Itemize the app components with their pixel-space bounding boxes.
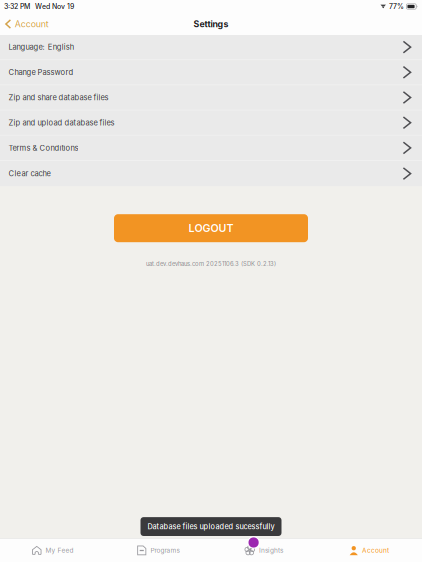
staticText: Zip and share database files bbox=[8, 93, 108, 102]
staticText: uat.dev.devhaus.com 20251106.3 (SDK 0.2.… bbox=[146, 260, 276, 267]
button[interactable]: Zip and share database files bbox=[0, 85, 422, 111]
button[interactable]: Language: bbox=[0, 35, 422, 60]
staticText: My Feed bbox=[46, 546, 74, 554]
staticText: Database files uploaded sucessfully bbox=[147, 522, 274, 531]
button[interactable]: Clear cache bbox=[0, 161, 422, 186]
staticText: Settings bbox=[193, 19, 228, 29]
button[interactable]: Account bbox=[316, 539, 422, 562]
staticText: Programs bbox=[150, 546, 179, 554]
button[interactable]: My Feed bbox=[0, 539, 105, 562]
staticText: Account bbox=[15, 19, 49, 29]
button[interactable]: LOGOUT bbox=[114, 214, 308, 242]
button[interactable]: Programs bbox=[105, 539, 211, 562]
button[interactable]: Change Password bbox=[0, 60, 422, 85]
staticText: Zip and upload database files bbox=[8, 118, 114, 127]
button[interactable]: Account bbox=[0, 13, 55, 35]
staticText: 77% bbox=[389, 2, 404, 11]
staticText: Change Password bbox=[8, 68, 73, 77]
staticText: Terms & Conditions bbox=[8, 143, 78, 152]
staticText: 3:32 PM bbox=[4, 2, 30, 11]
staticText: Account bbox=[362, 546, 389, 554]
button[interactable]: Terms & Conditions bbox=[0, 136, 422, 161]
button[interactable]: Zip and upload database files bbox=[0, 111, 422, 136]
staticText: Language: bbox=[8, 42, 44, 52]
staticText: English bbox=[48, 42, 74, 52]
staticText: LOGOUT bbox=[188, 222, 233, 235]
button[interactable]: Insights bbox=[211, 539, 316, 562]
staticText: Insights bbox=[259, 546, 283, 554]
staticText: Clear cache bbox=[8, 169, 50, 178]
staticText: Wed Nov 19 bbox=[35, 2, 74, 11]
